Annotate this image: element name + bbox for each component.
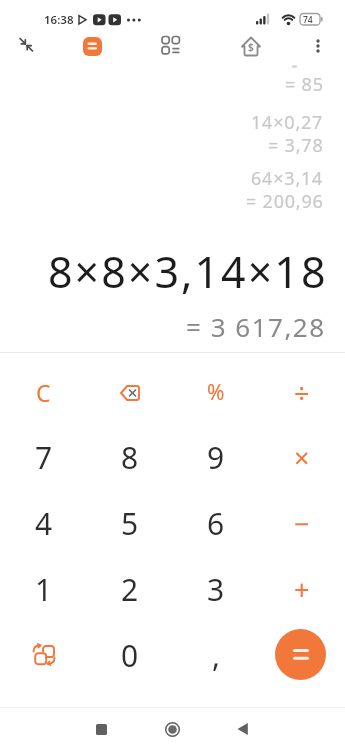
staticText: ,	[212, 635, 221, 676]
button[interactable]: −	[259, 490, 345, 556]
button[interactable]: $	[240, 35, 262, 57]
button[interactable]	[83, 37, 102, 56]
button[interactable]	[228, 714, 258, 744]
button[interactable]: +	[259, 556, 345, 622]
staticText: 0	[121, 635, 139, 676]
staticText: = 3,78	[268, 133, 324, 158]
staticText: 74	[303, 14, 313, 26]
button[interactable]: 5	[87, 490, 173, 556]
button[interactable]	[0, 622, 87, 688]
staticText: $	[248, 40, 254, 54]
staticText: 3	[207, 569, 225, 610]
staticText: %	[207, 378, 225, 407]
button[interactable]: 1	[0, 556, 87, 622]
staticText: 64×3,14	[251, 166, 324, 191]
button[interactable]: 2	[87, 556, 173, 622]
button[interactable]	[87, 360, 173, 425]
button[interactable]: 3	[173, 556, 259, 622]
button[interactable]: 9	[173, 425, 259, 490]
button[interactable]	[86, 714, 116, 744]
staticText: 1	[35, 569, 53, 610]
staticText: 16:38	[44, 12, 74, 28]
button[interactable]: ,	[173, 622, 259, 688]
staticText: = 85	[285, 72, 324, 97]
staticText: 4	[35, 503, 53, 544]
button[interactable]: ×	[259, 425, 345, 490]
button[interactable]: 6	[173, 490, 259, 556]
staticText: 8×8×3,14×18	[48, 242, 328, 301]
staticText: 6	[207, 503, 225, 544]
button[interactable]	[157, 714, 187, 744]
staticText: ÷	[294, 374, 310, 411]
staticText: −	[294, 505, 310, 542]
button[interactable]	[259, 622, 345, 688]
button[interactable]	[160, 35, 182, 57]
button[interactable]: ÷	[259, 360, 345, 425]
staticText: 2	[121, 569, 139, 610]
button[interactable]: 0	[87, 622, 173, 688]
staticText: 7	[35, 437, 53, 478]
button[interactable]	[13, 32, 41, 60]
button[interactable]: 8	[87, 425, 173, 490]
staticText: = 200,96	[246, 189, 324, 214]
button[interactable]: 7	[0, 425, 87, 490]
button[interactable]: %	[173, 360, 259, 425]
button[interactable]: C	[0, 360, 87, 425]
staticText: = 3 617,28	[186, 309, 326, 344]
staticText: C	[36, 377, 51, 408]
button[interactable]: 4	[0, 490, 87, 556]
staticText: 5	[121, 503, 139, 544]
staticText: ×	[294, 439, 310, 476]
button[interactable]	[306, 34, 330, 58]
staticText: 8	[121, 437, 139, 478]
staticText: +	[294, 571, 310, 608]
staticText: 14×0,27	[251, 110, 324, 135]
staticText: 9	[207, 437, 225, 478]
